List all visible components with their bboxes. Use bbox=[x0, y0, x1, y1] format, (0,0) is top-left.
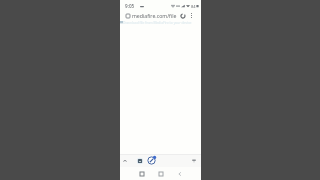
button[interactable]: Recents bbox=[137, 169, 146, 178]
button[interactable]: Edit bbox=[146, 155, 157, 166]
staticText: mediafire.com/file bbox=[132, 12, 177, 19]
button[interactable]: Site information bbox=[125, 13, 131, 19]
button[interactable]: Expand toolbar bbox=[121, 157, 129, 165]
staticText: 84 bbox=[191, 4, 196, 9]
button[interactable]: More options bbox=[188, 12, 195, 19]
staticText: 9:05 bbox=[125, 3, 135, 9]
button[interactable]: Tabs bbox=[136, 157, 144, 165]
button[interactable]: Back bbox=[175, 169, 184, 178]
staticText: Download file from MediaFire to your dev… bbox=[123, 20, 192, 24]
button[interactable]: Home bbox=[156, 169, 165, 178]
button[interactable]: Share bbox=[190, 157, 198, 165]
button[interactable]: Reload bbox=[179, 12, 186, 19]
